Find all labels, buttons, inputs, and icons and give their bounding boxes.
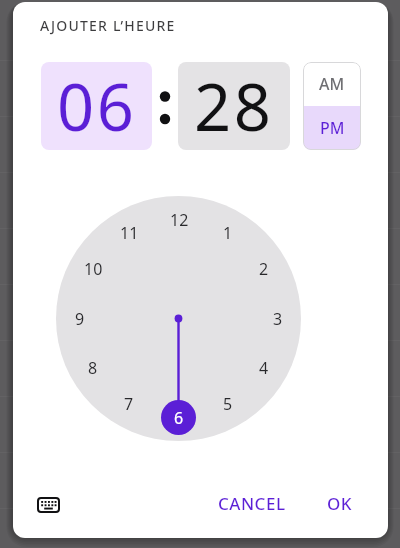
staticText: 5 [223,393,233,415]
button[interactable]: 28 [178,62,290,150]
button[interactable]: AM [303,62,361,106]
staticText: 4 [259,357,269,379]
button[interactable]: 06 [41,62,152,150]
staticText: 2 [259,258,269,280]
staticText: CANCEL [218,492,286,515]
staticText: 11 [120,222,139,244]
staticText: 28 [194,62,274,150]
button[interactable]: CANCEL [210,486,293,520]
staticText: 12 [170,209,189,231]
staticText: 8 [88,357,98,379]
staticText: PM [320,117,345,139]
staticText: 6 [174,407,184,429]
staticText: AJOUTER L’HEURE [40,16,176,35]
button[interactable] [26,489,70,521]
staticText: 1 [223,222,233,244]
staticText: 9 [75,308,85,330]
button[interactable]: PM [303,106,361,150]
staticText: 7 [124,393,134,415]
staticText: 10 [84,258,103,280]
staticText: 06 [57,62,137,150]
staticText: OK [327,492,353,515]
button[interactable]: OK [318,486,362,520]
staticText: AM [319,73,345,95]
staticText: 3 [273,308,283,330]
